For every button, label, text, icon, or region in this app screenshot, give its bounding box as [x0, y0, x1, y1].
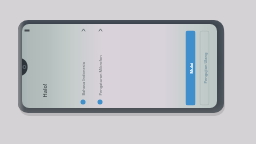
staticText: Pengujian Ulang	[202, 51, 207, 83]
staticText: Halo!	[40, 83, 47, 97]
staticText: Mulai	[188, 62, 193, 73]
staticText: Bahasa Indonesia	[80, 61, 85, 95]
button[interactable]: Mulai	[185, 30, 195, 105]
staticText: Pengaturan Mikrofon	[97, 54, 102, 95]
button[interactable]: Bahasa Indonesia	[80, 28, 85, 104]
button[interactable]: Pengaturan Mikrofon	[97, 28, 102, 104]
button[interactable]: Pengujian Ulang	[199, 30, 209, 105]
